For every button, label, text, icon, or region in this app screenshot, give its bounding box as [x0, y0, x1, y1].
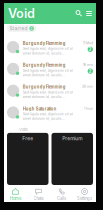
staticText: Burgundy Flemming	[23, 85, 66, 90]
button[interactable]: Search	[76, 10, 82, 16]
staticText: Sed ligula erat, dignissim sit at	[23, 47, 73, 51]
staticText: amet dolorum id, iaculis...	[23, 95, 65, 99]
button[interactable]: Free	[7, 133, 48, 185]
staticText: Starred	[10, 26, 28, 31]
staticText: Sed ligula erat, dignissim sit at	[23, 68, 73, 72]
button[interactable]: Burgundy Flemming	[4, 39, 96, 61]
staticText: 2	[89, 47, 92, 52]
button[interactable]: Settings	[73, 186, 96, 203]
staticText: 30 min	[82, 85, 93, 89]
staticText: 11 Mod	[83, 41, 93, 45]
staticText: Sed ligula erat, dignissim sit at	[23, 90, 73, 94]
button[interactable]: Burgundy Flemming	[4, 82, 96, 104]
staticText: Home	[10, 196, 21, 201]
staticText: Calls	[57, 196, 66, 201]
staticText: Sed ligula erat, dignissim sit at	[23, 112, 73, 116]
button[interactable]: Premium	[51, 133, 93, 185]
staticText: Chats	[33, 196, 43, 201]
staticText: Void	[8, 6, 35, 21]
staticText: amet dolorum id, iaculis...	[23, 73, 65, 77]
staticText: amet dolorum id, iaculis...	[23, 117, 65, 121]
staticText: Settings	[77, 196, 92, 201]
staticText: 1 hour	[84, 106, 93, 110]
staticText: Free	[22, 135, 33, 141]
staticText: 2	[89, 69, 92, 74]
staticText: Burgundy Flemming	[23, 63, 66, 68]
staticText: 3	[30, 26, 33, 31]
staticText: 16 min	[83, 63, 93, 67]
button[interactable]: Burgundy Flemming	[4, 61, 96, 82]
button[interactable]: Home	[4, 186, 27, 203]
staticText: Void	[19, 127, 27, 132]
staticText: amet dolorum id, iaculis...	[23, 51, 65, 55]
staticText: Premium	[62, 135, 82, 141]
staticText: Hugh Saturation	[23, 106, 57, 111]
button[interactable]: Hugh Saturation	[4, 104, 96, 126]
button[interactable]: Menu	[82, 10, 92, 16]
button[interactable]: Chats	[27, 186, 50, 203]
staticText: Burgundy Flemming	[23, 41, 66, 46]
button[interactable]: Starred	[7, 25, 36, 32]
button[interactable]: Calls	[50, 186, 73, 203]
